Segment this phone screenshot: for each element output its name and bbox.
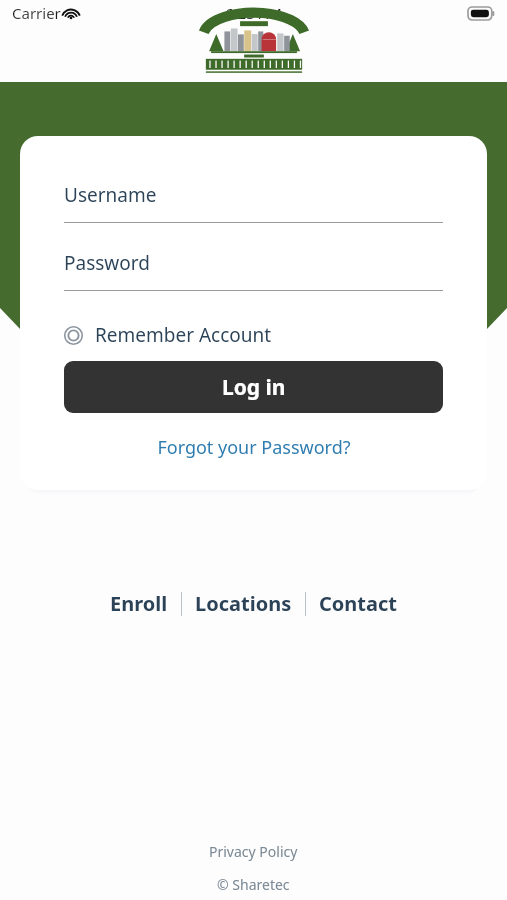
button[interactable]: Username [64,182,443,223]
staticText: Log in [222,373,286,402]
button[interactable]: Contact [306,585,410,622]
button[interactable]: Enroll [97,585,181,622]
button[interactable]: Password [64,250,443,291]
button[interactable]: Log in [64,361,443,413]
staticText: Enroll [110,590,168,617]
staticText: Password [64,250,150,276]
staticText: Carrier [12,3,61,23]
staticText: Privacy Policy [209,842,298,861]
staticText: 6:23 AM [225,3,282,23]
button[interactable]: Forgot your Password? [20,435,487,460]
staticText: Username [64,182,157,208]
button[interactable]: Locations [182,585,305,622]
staticText: Locations [195,590,292,617]
button[interactable]: Privacy Policy [209,842,298,861]
staticText: Remember Account [95,322,272,348]
staticText: Forgot your Password? [157,435,351,460]
staticText: Contact [319,590,397,617]
button[interactable]: Remember Account [64,316,272,354]
staticText: © Sharetec [217,875,290,894]
